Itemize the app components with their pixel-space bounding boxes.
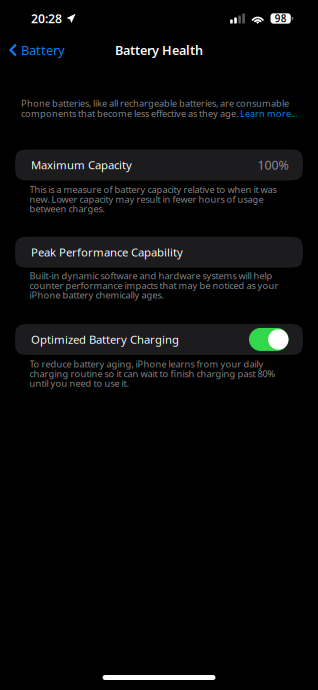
staticText: 20:28 [31,10,62,27]
staticText: Battery [21,41,65,59]
staticText: Learn more... [240,107,297,119]
staticText: 100% [257,157,288,173]
staticText: 98 [275,12,287,25]
staticText: To reduce battery aging, iPhone learns f… [29,358,275,389]
staticText: This is a measure of battery capacity re… [29,183,276,215]
button[interactable]: Optimized Battery Charging [249,328,288,351]
staticText: Peak Performance Capability [31,245,183,260]
button[interactable]: Battery [0,37,73,63]
staticText: Phone batteries, like all rechargeable b… [21,97,289,109]
button[interactable]: Optimized Battery Charging [15,324,303,355]
staticText: Built-in dynamic software and hardware s… [29,270,278,301]
staticText: Maximum Capacity [31,157,132,172]
staticText: Optimized Battery Charging [31,332,179,347]
button[interactable]: Learn more... [240,107,297,119]
button[interactable]: Peak Performance Capability [15,237,303,268]
staticText: components that become less effective as… [21,107,240,119]
button[interactable]: Maximum Capacity [15,149,303,180]
staticText: Battery Health [115,42,203,58]
